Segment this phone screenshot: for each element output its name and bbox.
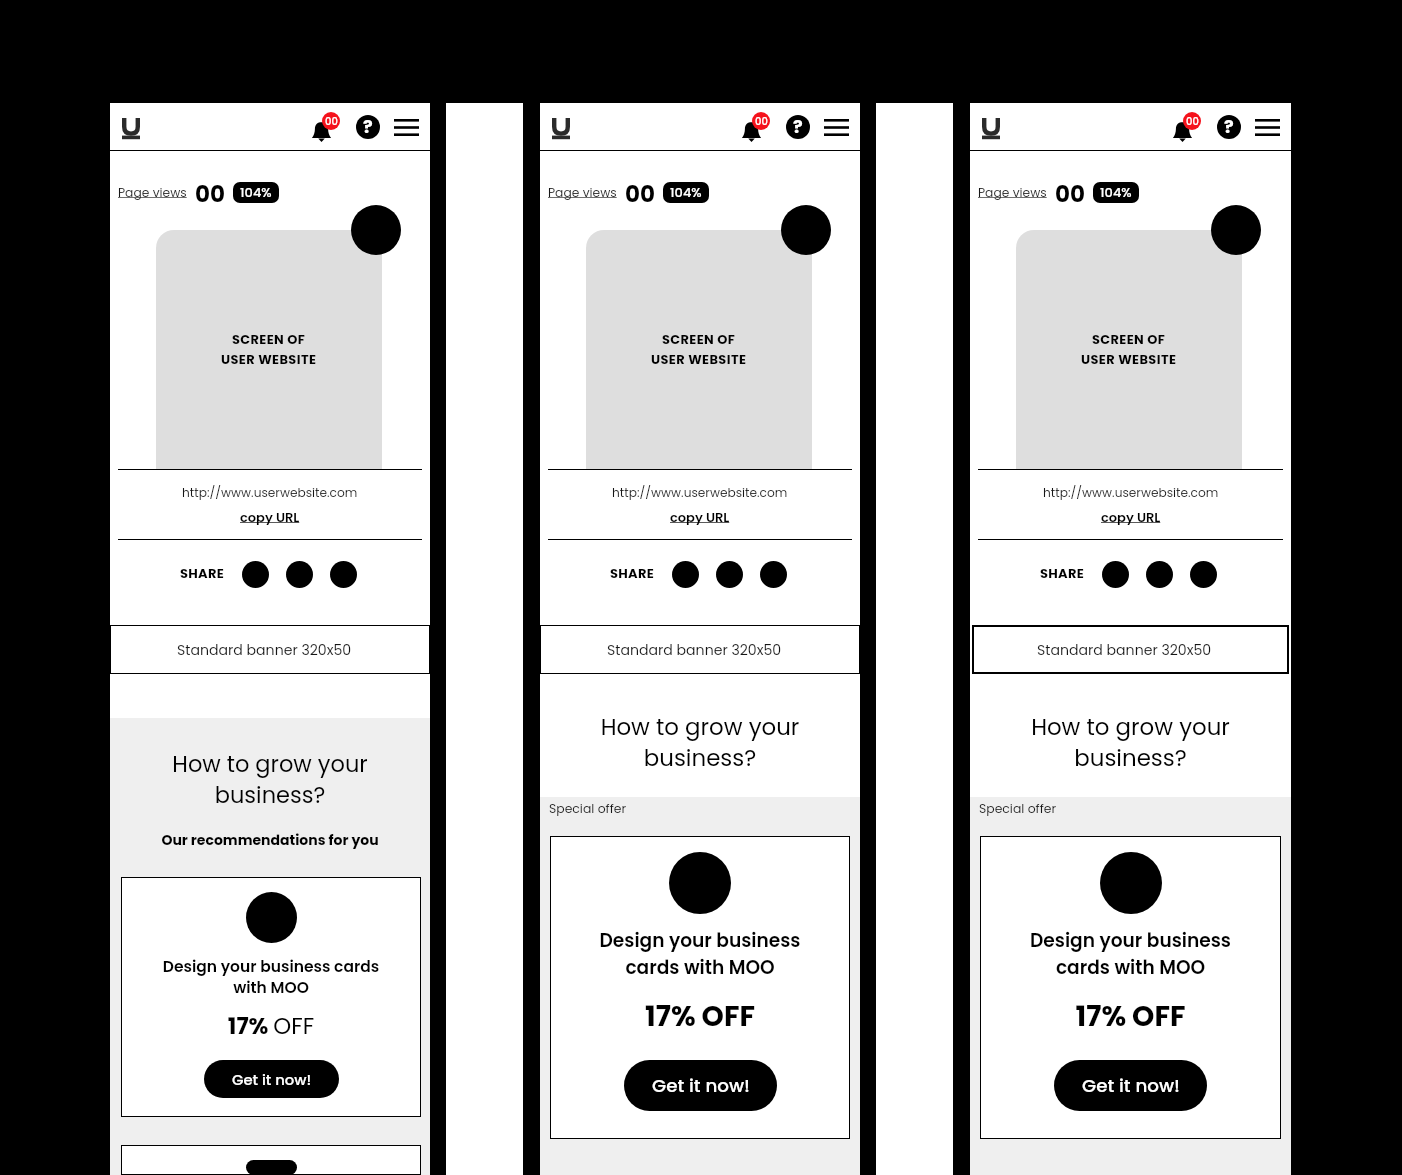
staticText: 17% OFF <box>980 996 1281 1036</box>
button[interactable]: Page views <box>548 184 617 201</box>
button[interactable]: Notifications <box>1170 112 1200 142</box>
button[interactable]: Share on Facebook <box>1102 561 1129 588</box>
button[interactable]: Get it now! <box>624 1060 777 1111</box>
staticText: Design your business cards with MOO <box>121 956 421 998</box>
staticText: SHARE <box>610 564 655 582</box>
button[interactable]: Help <box>353 112 383 142</box>
button[interactable]: Standard banner 320x50 <box>110 625 430 674</box>
staticText: http://www.userwebsite.com <box>182 484 358 501</box>
staticText: Standard banner 320x50 <box>607 640 782 660</box>
staticText: 00 <box>325 114 338 128</box>
staticText: Our recommendations for you <box>110 830 430 850</box>
button[interactable]: Notifications <box>309 112 339 142</box>
button[interactable]: Standard banner 320x50 <box>540 625 860 674</box>
staticText: Standard banner 320x50 <box>1037 640 1212 660</box>
button[interactable]: Notifications <box>739 112 769 142</box>
button[interactable]: Share on Twitter <box>1146 561 1173 588</box>
button[interactable]: Profile picture <box>781 205 831 255</box>
staticText: Get it now! <box>652 1073 750 1099</box>
staticText: copy URL <box>240 508 300 526</box>
button[interactable]: Help <box>1214 112 1244 142</box>
staticText: 17% OFF <box>550 996 850 1036</box>
other: Logo <box>122 118 140 140</box>
staticText: SCREEN OF <box>232 330 306 348</box>
button[interactable]: Share on Twitter <box>286 561 313 588</box>
button[interactable]: copy URL <box>240 508 300 526</box>
staticText: Design your business cards with MOO <box>550 927 850 981</box>
staticText: copy URL <box>1101 508 1161 526</box>
staticText: 104% <box>670 183 702 201</box>
staticText: Standard banner 320x50 <box>177 640 352 660</box>
staticText: USER WEBSITE <box>1081 350 1177 368</box>
button[interactable]: Help <box>783 112 813 142</box>
staticText: 00 <box>755 114 768 128</box>
staticText: 00 <box>195 178 225 204</box>
button[interactable]: Menu <box>391 112 421 142</box>
button[interactable]: Share on Instagram <box>760 561 787 588</box>
staticText: 00 <box>625 178 655 204</box>
staticText: copy URL <box>670 508 730 526</box>
staticText: Get it now! <box>232 1069 312 1090</box>
button[interactable]: Profile picture <box>351 205 401 255</box>
staticText: SHARE <box>180 564 225 582</box>
button[interactable]: Get it now! <box>1054 1060 1207 1111</box>
staticText: Page views <box>978 184 1047 201</box>
button[interactable]: Standard banner 320x50 <box>972 625 1289 674</box>
staticText: SCREEN OF <box>662 330 736 348</box>
staticText: USER WEBSITE <box>221 350 317 368</box>
staticText: Special offer <box>979 800 1057 817</box>
staticText: ? <box>363 115 373 138</box>
staticText: How to grow your business? <box>970 711 1291 774</box>
staticText: SCREEN OF <box>1092 330 1166 348</box>
staticText: SHARE <box>1040 564 1085 582</box>
staticText: http://www.userwebsite.com <box>1043 484 1219 501</box>
staticText: 00 <box>1055 178 1085 204</box>
staticText: ? <box>793 115 803 138</box>
staticText: Design your business cards with MOO <box>980 927 1281 981</box>
button[interactable]: Page views <box>978 184 1047 201</box>
staticText: 00 <box>1186 114 1199 128</box>
staticText: 17% OFF <box>121 1010 421 1042</box>
other: Logo <box>552 118 570 140</box>
staticText: 104% <box>1100 183 1132 201</box>
other: Logo <box>982 118 1000 140</box>
staticText: How to grow your business? <box>540 711 860 774</box>
button[interactable]: Profile picture <box>1211 205 1261 255</box>
staticText: 104% <box>240 183 272 201</box>
staticText: USER WEBSITE <box>651 350 747 368</box>
button[interactable]: copy URL <box>1101 508 1161 526</box>
staticText: Special offer <box>549 800 627 817</box>
button[interactable]: Page views <box>118 184 187 201</box>
staticText: How to grow your business? <box>110 748 430 811</box>
button[interactable]: Share on Instagram <box>1190 561 1217 588</box>
button[interactable]: copy URL <box>670 508 730 526</box>
button[interactable]: Share on Facebook <box>242 561 269 588</box>
staticText: Get it now! <box>1082 1073 1180 1099</box>
button[interactable]: Menu <box>1252 112 1282 142</box>
staticText: ? <box>1224 115 1234 138</box>
button[interactable]: Share on Instagram <box>330 561 357 588</box>
button[interactable]: Share on Twitter <box>716 561 743 588</box>
button[interactable]: Share on Facebook <box>672 561 699 588</box>
staticText: Page views <box>118 184 187 201</box>
staticText: Page views <box>548 184 617 201</box>
button[interactable]: Menu <box>821 112 851 142</box>
button[interactable]: Get it now! <box>204 1060 339 1098</box>
staticText: http://www.userwebsite.com <box>612 484 788 501</box>
